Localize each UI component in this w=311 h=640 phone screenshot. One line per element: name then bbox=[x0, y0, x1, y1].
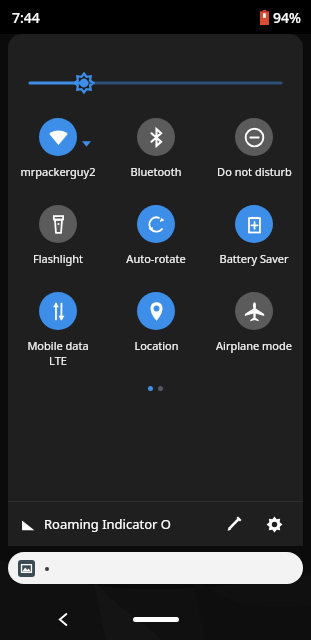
button[interactable]: Auto-rotate bbox=[107, 205, 205, 266]
button[interactable]: Edit bbox=[219, 509, 249, 539]
staticText: Roaming Indicator O bbox=[44, 515, 171, 533]
staticText: Battery Saver bbox=[219, 251, 289, 266]
staticText: Bluetooth bbox=[130, 164, 182, 179]
button[interactable]: Home bbox=[127, 602, 185, 636]
staticText: Flashlight bbox=[33, 251, 83, 266]
button[interactable]: Bluetooth bbox=[107, 118, 205, 179]
staticText: 94% bbox=[273, 8, 301, 27]
staticText: Location bbox=[134, 338, 179, 353]
staticText: 7:44 bbox=[12, 8, 40, 27]
staticText: mrpackerguy2 bbox=[20, 164, 96, 179]
button[interactable]: Airplane mode bbox=[205, 292, 303, 353]
button[interactable]: Flashlight bbox=[8, 205, 107, 266]
button[interactable]: Do not disturb bbox=[205, 118, 303, 179]
staticText: Auto-rotate bbox=[126, 251, 186, 266]
button[interactable]: mrpackerguy2 bbox=[8, 118, 107, 179]
button[interactable]: Location bbox=[107, 292, 205, 353]
staticText: Mobile data bbox=[27, 338, 89, 353]
button[interactable]: Settings bbox=[259, 509, 289, 539]
button[interactable]: Mobile data bbox=[8, 292, 107, 368]
staticText: Airplane mode bbox=[216, 338, 292, 353]
button[interactable]: Battery Saver bbox=[205, 205, 303, 266]
button[interactable]: Back bbox=[48, 604, 78, 634]
button[interactable]: Brightness bbox=[30, 70, 281, 96]
staticText: Do not disturb bbox=[217, 164, 292, 179]
staticText: LTE bbox=[49, 353, 67, 368]
button[interactable] bbox=[8, 552, 303, 584]
